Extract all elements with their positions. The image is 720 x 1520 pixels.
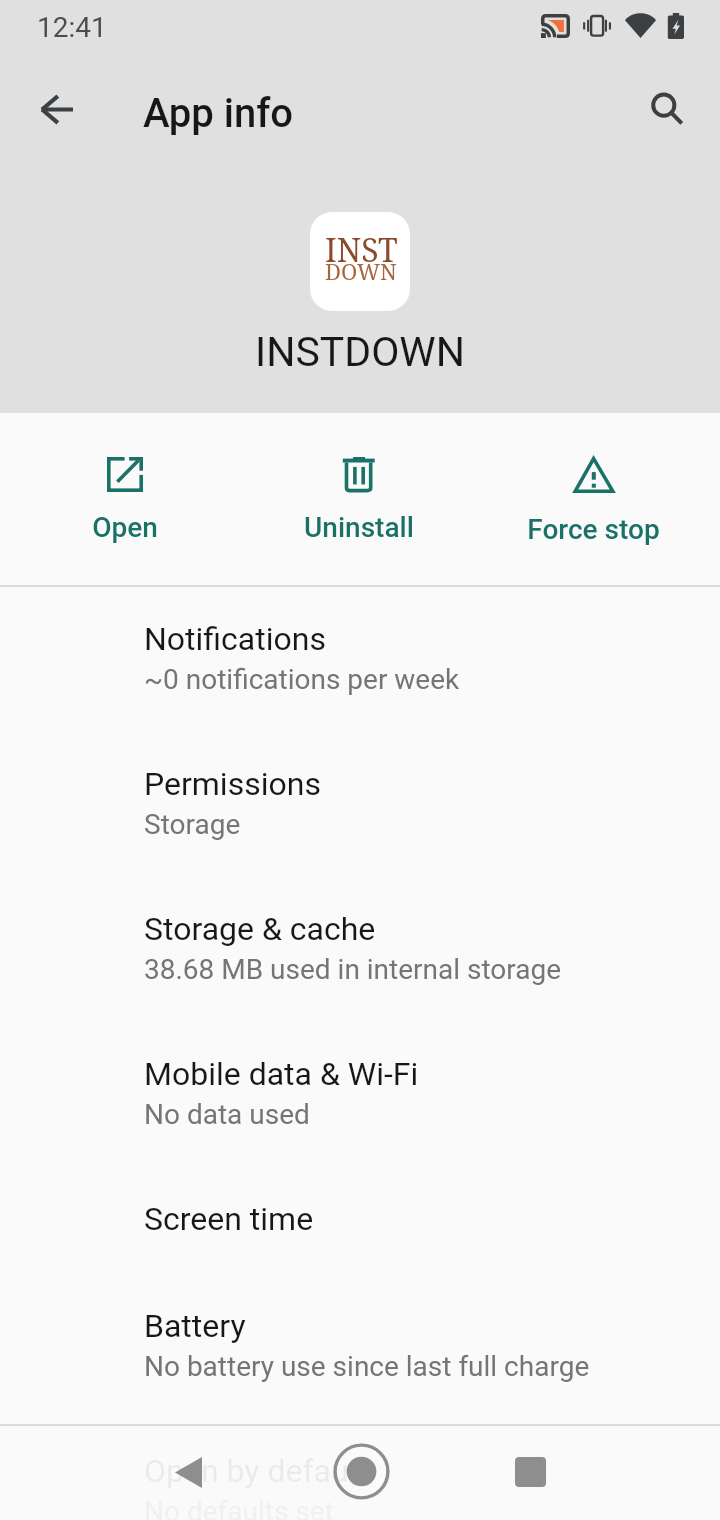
staticText: Open by default: [144, 1452, 367, 1490]
staticText: ~0 notifications per week: [144, 663, 460, 696]
button[interactable]: Home: [333, 1443, 389, 1499]
button[interactable]: Permissions: [0, 732, 720, 877]
staticText: Uninstall: [304, 511, 414, 544]
staticText: Open: [92, 511, 158, 544]
staticText: Battery: [144, 1307, 246, 1345]
button[interactable]: Back: [160, 1444, 216, 1500]
staticText: No data used: [144, 1098, 310, 1131]
staticText: Mobile data & Wi-Fi: [144, 1055, 419, 1093]
staticText: DOWN: [325, 256, 397, 286]
button[interactable]: Screen time: [0, 1167, 720, 1274]
button[interactable]: Mobile data & Wi-Fi: [0, 1022, 720, 1167]
staticText: Force stop: [527, 513, 660, 546]
staticText: No defaults set: [144, 1495, 334, 1520]
button[interactable]: Navigate up: [16, 69, 96, 149]
button[interactable]: Storage & cache: [0, 877, 720, 1022]
button[interactable]: Open by default: [0, 1419, 720, 1520]
button[interactable]: Force stop: [477, 413, 710, 585]
button[interactable]: Notifications: [0, 587, 720, 732]
staticText: INST: [325, 228, 398, 272]
staticText: App info: [143, 90, 294, 137]
button[interactable]: Search: [627, 69, 707, 149]
staticText: Notifications: [144, 620, 326, 658]
button[interactable]: Open: [8, 413, 241, 585]
staticText: Storage: [144, 808, 241, 841]
button[interactable]: Battery: [0, 1274, 720, 1419]
staticText: No battery use since last full charge: [144, 1350, 590, 1383]
staticText: 38.68 MB used in internal storage: [144, 953, 562, 986]
staticText: INSTDOWN: [0, 328, 720, 376]
staticText: Permissions: [144, 765, 321, 803]
staticText: Storage & cache: [144, 910, 376, 948]
button[interactable]: Recent apps: [502, 1444, 558, 1500]
staticText: Screen time: [144, 1200, 314, 1238]
button[interactable]: Uninstall: [242, 413, 475, 585]
staticText: 12:41: [37, 11, 107, 44]
